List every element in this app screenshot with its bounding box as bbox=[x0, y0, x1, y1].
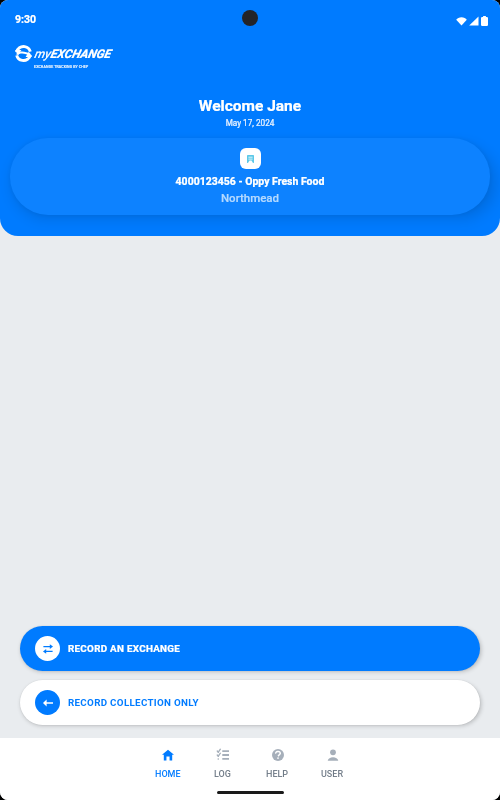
button[interactable]: RECORD COLLECTION ONLY bbox=[20, 680, 480, 725]
staticText: Welcome Jane bbox=[0, 97, 500, 115]
staticText: Northmead bbox=[10, 191, 490, 204]
button[interactable]: HELP bbox=[250, 740, 305, 782]
staticText: RECORD AN EXCHANGE bbox=[68, 643, 181, 654]
button[interactable]: LOG bbox=[195, 740, 250, 782]
staticText: HELP bbox=[266, 769, 289, 780]
staticText: RECORD COLLECTION ONLY bbox=[68, 697, 199, 708]
staticText: May 17, 2024 bbox=[0, 118, 500, 128]
button[interactable]: Selected site: 4000123456 - Oppy Fresh F… bbox=[10, 138, 490, 215]
button[interactable]: HOME bbox=[140, 740, 195, 782]
staticText: HOME bbox=[155, 769, 181, 780]
staticText: 9:30 bbox=[15, 13, 37, 25]
button[interactable]: USER bbox=[305, 740, 360, 782]
staticText: EXCHANGE TRACKING BY CHEP bbox=[34, 65, 89, 69]
staticText: my bbox=[34, 47, 50, 61]
button[interactable]: RECORD AN EXCHANGE bbox=[20, 626, 480, 671]
staticText: USER bbox=[321, 769, 344, 780]
staticText: LOG bbox=[214, 769, 231, 780]
staticText: 4000123456 - Oppy Fresh Food bbox=[10, 175, 490, 187]
staticText: EXCHANGE bbox=[50, 47, 111, 61]
